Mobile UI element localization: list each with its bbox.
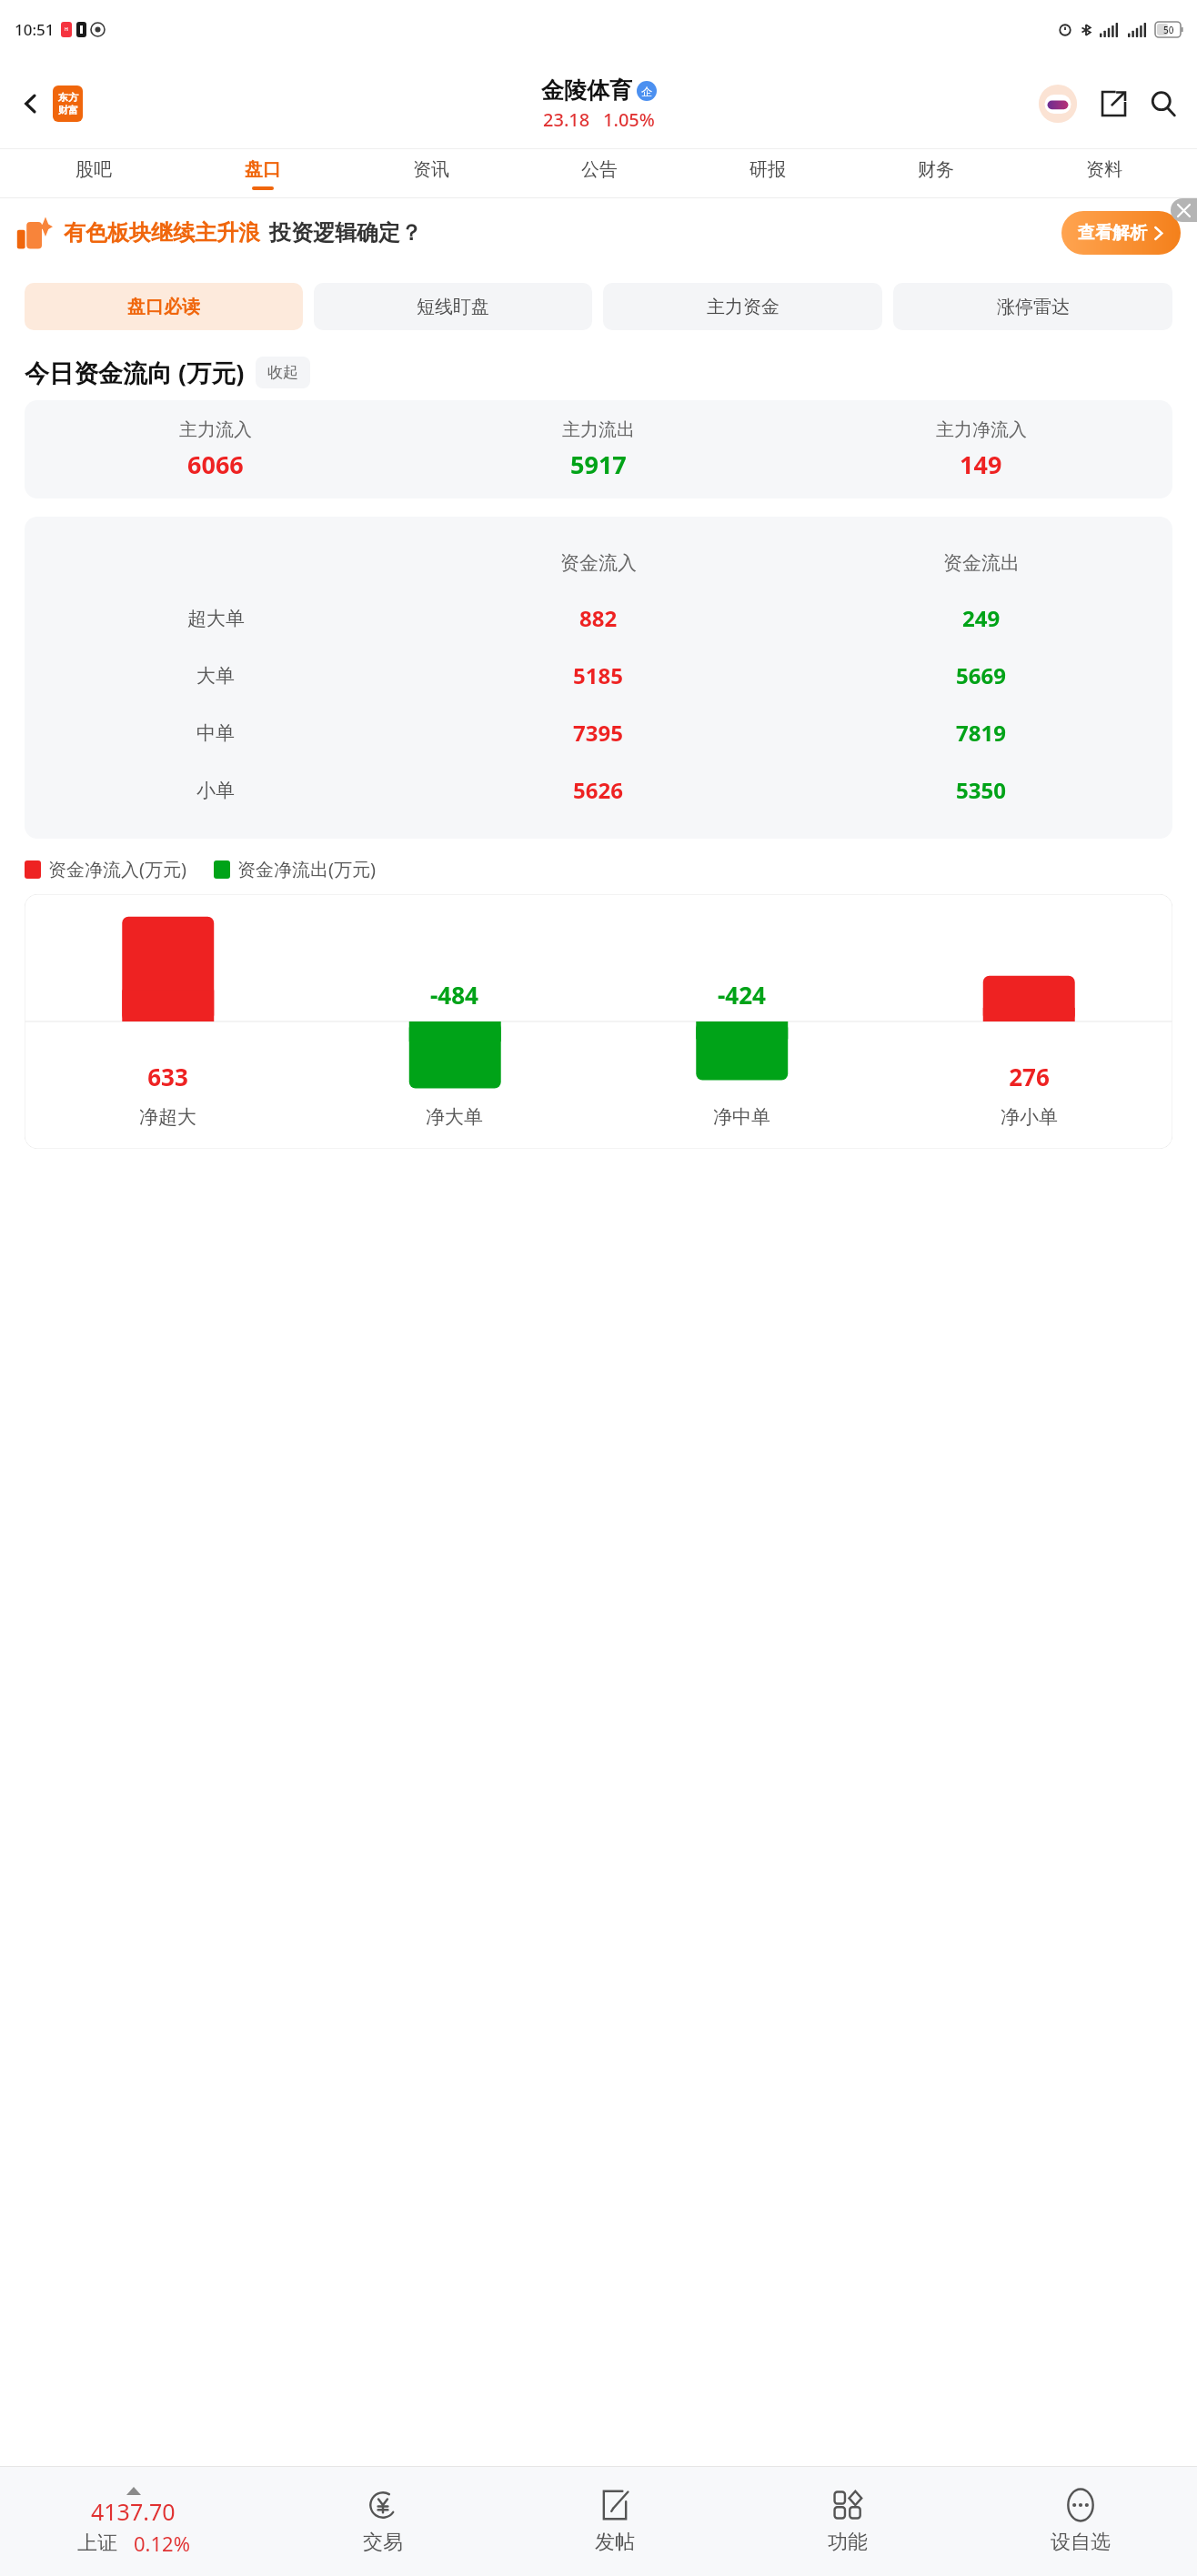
- button[interactable]: 有色板块继续主升浪: [16, 198, 1188, 267]
- button[interactable]: 资料: [1020, 149, 1188, 198]
- staticText: 主力流入: [179, 418, 252, 441]
- staticText: 149: [960, 448, 1002, 481]
- staticText: 盘口: [245, 158, 281, 181]
- staticText: H: [65, 26, 68, 33]
- button[interactable]: 4137.70: [0, 2467, 267, 2576]
- staticText: 主力资金: [707, 296, 780, 318]
- staticText: 投资逻辑确定？: [269, 219, 422, 247]
- staticText: 交易: [363, 2530, 403, 2555]
- staticText: 882: [579, 603, 618, 633]
- staticText: -424: [718, 979, 766, 1011]
- staticText: 资金流出: [943, 551, 1020, 575]
- button[interactable]: 涨停雷达: [893, 283, 1172, 330]
- staticText: 小单: [196, 779, 235, 802]
- staticText: 今日资金流向 (万元): [25, 356, 245, 389]
- staticText: 超大单: [187, 607, 245, 630]
- staticText: 5626: [573, 775, 623, 805]
- staticText: 10:51: [15, 19, 55, 40]
- staticText: 资金流入: [560, 551, 637, 575]
- staticText: 5917: [570, 448, 627, 481]
- button[interactable]: 盘口: [178, 149, 347, 198]
- staticText: 财富: [58, 104, 78, 116]
- staticText: 7819: [956, 718, 1006, 748]
- staticText: 1.05%: [603, 107, 655, 132]
- staticText: 276: [1009, 1061, 1050, 1092]
- staticText: 净小单: [1001, 1105, 1058, 1129]
- staticText: 股吧: [75, 158, 112, 181]
- staticText: 研报: [749, 158, 786, 181]
- staticText: 资讯: [413, 158, 449, 181]
- staticText: 公告: [581, 158, 618, 181]
- button[interactable]: Share: [1093, 84, 1133, 124]
- staticText: 查看解析: [1078, 222, 1147, 244]
- button[interactable]: 交易: [267, 2467, 498, 2576]
- button[interactable]: 财务: [851, 149, 1020, 198]
- button[interactable]: Back: [11, 84, 51, 124]
- staticText: 发帖: [595, 2530, 635, 2555]
- staticText: 249: [962, 603, 1001, 633]
- staticText: 上证: [77, 2531, 117, 2556]
- button[interactable]: AI assistant: [1037, 83, 1079, 125]
- staticText: 7395: [573, 718, 623, 748]
- button[interactable]: 短线盯盘: [314, 283, 592, 330]
- staticText: 净大单: [426, 1105, 483, 1129]
- button[interactable]: Close ad: [1171, 198, 1197, 222]
- button[interactable]: 查看解析: [1061, 211, 1181, 255]
- staticText: 资金净流入(万元): [48, 857, 186, 881]
- button[interactable]: 盘口必读: [25, 283, 303, 330]
- button[interactable]: 主力流入: [25, 400, 1172, 498]
- button[interactable]: 主力资金: [603, 283, 882, 330]
- button[interactable]: 633: [25, 894, 1172, 1149]
- staticText: 6066: [187, 448, 244, 481]
- staticText: 净超大: [139, 1105, 196, 1129]
- staticText: 633: [147, 1061, 188, 1092]
- button[interactable]: 资讯: [347, 149, 515, 198]
- staticText: 设自选: [1051, 2530, 1111, 2555]
- staticText: 0.12%: [134, 2530, 190, 2557]
- staticText: 短线盯盘: [417, 296, 489, 318]
- staticText: 主力流出: [562, 418, 635, 441]
- button[interactable]: 公告: [515, 149, 683, 198]
- button[interactable]: 研报: [683, 149, 851, 198]
- staticText: 大单: [196, 664, 235, 688]
- staticText: -484: [430, 979, 478, 1011]
- staticText: 盘口必读: [127, 296, 200, 318]
- staticText: 净中单: [713, 1105, 770, 1129]
- staticText: 功能: [828, 2530, 868, 2555]
- button[interactable]: Search: [1142, 83, 1184, 125]
- button[interactable]: 发帖: [498, 2467, 731, 2576]
- staticText: 涨停雷达: [997, 296, 1070, 318]
- staticText: 5350: [956, 775, 1006, 805]
- staticText: 50: [1163, 24, 1174, 36]
- button[interactable]: 功能: [731, 2467, 964, 2576]
- button[interactable]: 收起: [256, 357, 310, 388]
- staticText: 收起: [267, 363, 298, 382]
- staticText: 资料: [1086, 158, 1122, 181]
- staticText: 5185: [573, 660, 623, 690]
- staticText: 5669: [956, 660, 1006, 690]
- staticText: 主力净流入: [936, 418, 1027, 441]
- button[interactable]: 设自选: [964, 2467, 1197, 2576]
- staticText: 23.18: [543, 107, 590, 132]
- staticText: 有色板块继续主升浪: [64, 219, 260, 247]
- staticText: 中单: [196, 721, 235, 745]
- staticText: 企: [641, 85, 652, 98]
- button[interactable]: 股吧: [9, 149, 178, 198]
- button[interactable]: 资金流入: [25, 517, 1172, 839]
- staticText: 资金净流出(万元): [237, 857, 376, 881]
- button[interactable]: East Money: [53, 86, 83, 122]
- staticText: 财务: [918, 158, 954, 181]
- staticText: 东方: [58, 91, 78, 104]
- staticText: 金陵体育: [541, 76, 632, 105]
- staticText: 4137.70: [91, 2496, 176, 2527]
